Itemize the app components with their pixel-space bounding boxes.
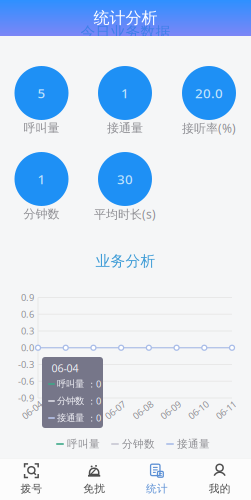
- staticText: 接听率(%): [182, 120, 236, 136]
- staticText: 06-08: [131, 404, 154, 416]
- staticText: ：0: [87, 412, 101, 424]
- staticText: 0.3: [21, 325, 34, 337]
- staticText: ：0: [87, 395, 101, 407]
- staticText: 30: [117, 170, 133, 188]
- staticText: 06-11: [214, 404, 237, 416]
- staticText: ：0: [87, 378, 101, 390]
- staticText: 我的: [209, 482, 231, 495]
- staticText: 呼叫量: [57, 378, 84, 390]
- button[interactable]: 拨号: [0, 458, 63, 500]
- staticText: 呼叫量: [23, 121, 59, 135]
- staticText: 分钟数: [57, 395, 84, 407]
- staticText: 0.0: [21, 342, 34, 354]
- staticText: -0.3: [18, 358, 34, 371]
- staticText: 接通量: [107, 121, 143, 135]
- staticText: 接通量: [57, 412, 84, 424]
- staticText: 统计分析: [93, 8, 157, 28]
- staticText: 5: [37, 84, 45, 102]
- staticText: 0.9: [21, 291, 34, 304]
- staticText: 今日业务数据: [80, 23, 170, 41]
- staticText: 0.6: [21, 308, 34, 320]
- staticText: 20.0: [195, 84, 223, 102]
- staticText: 1: [121, 84, 129, 102]
- staticText: 平均时长(s): [94, 206, 156, 222]
- staticText: -0.9: [18, 392, 34, 404]
- staticText: 06-07: [104, 404, 127, 416]
- staticText: 分钟数: [23, 207, 59, 221]
- staticText: 06-06: [76, 404, 99, 416]
- staticText: 1: [37, 170, 45, 188]
- staticText: 分钟数: [122, 437, 155, 450]
- button[interactable]: 免扰: [63, 458, 126, 500]
- staticText: 拨号: [20, 482, 42, 495]
- staticText: 接通量: [177, 437, 210, 450]
- button[interactable]: 统计: [125, 458, 188, 500]
- button[interactable]: 我的: [188, 458, 251, 500]
- staticText: 06-04: [20, 404, 43, 416]
- staticText: 呼叫量: [67, 437, 100, 450]
- staticText: 06-05: [48, 404, 71, 416]
- staticText: 业务分析: [95, 252, 155, 270]
- staticText: -0.6: [18, 375, 34, 387]
- staticText: 06-04: [51, 361, 78, 375]
- staticText: 免扰: [83, 482, 105, 495]
- staticText: 06-09: [159, 404, 182, 416]
- staticText: 06-10: [187, 404, 210, 416]
- staticText: 统计: [146, 482, 168, 495]
